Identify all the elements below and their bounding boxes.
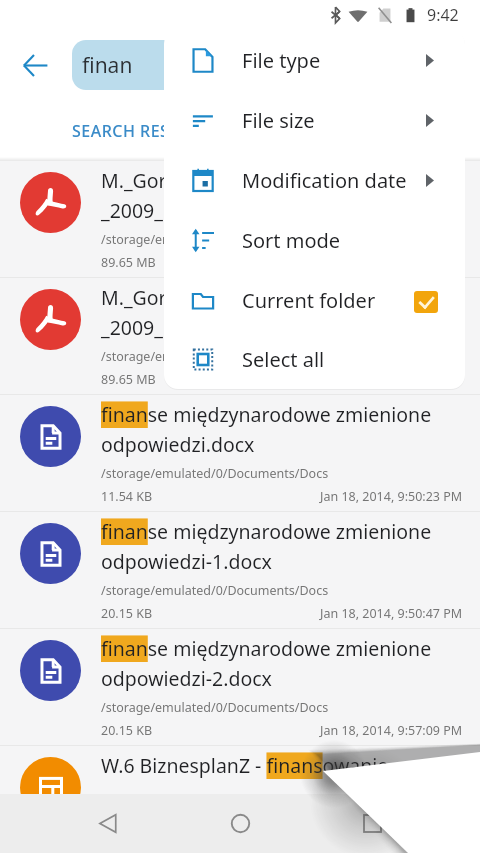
staticText: /storage/em [101, 348, 174, 365]
staticText: _2009_ [101, 197, 163, 224]
staticText: finan [82, 51, 133, 80]
staticText: 89.65 MB [101, 371, 156, 388]
staticText: /storage/emulated/0/Documents/Docs [101, 582, 329, 599]
staticText: File type [242, 47, 321, 74]
staticText: M._Gor [101, 167, 167, 194]
button[interactable]: Current folder [164, 270, 465, 330]
button[interactable]: Back [11, 41, 60, 90]
staticText: odpowiedzi-2.docx [101, 665, 272, 692]
staticText: odpowiedzi-1.docx [101, 548, 272, 575]
staticText: /storage/emulated/0/Documents/Docs [101, 465, 329, 482]
button[interactable]: M._Gor [0, 278, 480, 395]
staticText: Jan 18, 2014, 9:50:23 PM [320, 488, 463, 505]
staticText: Sort mode [242, 227, 341, 254]
button[interactable]: finanse międzynarodowe zmienione [0, 395, 480, 512]
staticText: SEARCH RESULTS [72, 120, 210, 142]
staticText: Modification date [242, 167, 407, 194]
button[interactable]: Sort mode [164, 210, 465, 270]
button[interactable]: Back [80, 795, 136, 851]
staticText: 89.65 MB [101, 254, 156, 271]
staticText: finanse międzynarodowe zmienione [101, 401, 432, 428]
button[interactable]: finanse międzynarodowe zmienione [0, 512, 480, 629]
button[interactable]: Home [212, 795, 268, 851]
button[interactable]: W.6 BiznesplanZ - finansowanie [0, 746, 480, 826]
staticText: 11.54 KB [101, 488, 153, 505]
button[interactable]: File type [164, 30, 465, 90]
staticText: 9:42 [427, 4, 459, 26]
staticText: /storage/emulated/0/Documents/Docs [101, 699, 329, 716]
staticText: File size [242, 107, 315, 134]
staticText: Current folder [242, 287, 376, 314]
staticText: odpowiedzi.docx [101, 431, 255, 458]
staticText: _2009_ [101, 314, 163, 341]
staticText: Jan 18, 2014, 9:50:47 PM [320, 605, 463, 622]
staticText: finanse międzynarodowe zmienione [101, 635, 432, 662]
button[interactable]: Select all [164, 330, 465, 389]
staticText: M._Gor [101, 284, 167, 311]
button[interactable]: Recents [344, 795, 400, 851]
staticText: Select all [242, 346, 325, 373]
button[interactable]: SEARCH RESULTS [72, 108, 210, 154]
staticText: finanse międzynarodowe zmienione [101, 518, 432, 545]
button[interactable]: finan [72, 40, 400, 90]
staticText: Jan 18, 2014, 9:57:09 PM [320, 722, 463, 739]
button[interactable]: Modification date [164, 150, 465, 210]
button[interactable]: File size [164, 90, 465, 150]
staticText: 20.15 KB [101, 605, 153, 622]
staticText: W.6 BiznesplanZ - finansowanie [101, 752, 389, 779]
staticText: /storage/em [101, 231, 174, 248]
button[interactable]: finanse międzynarodowe zmienione [0, 629, 480, 746]
staticText: 20.15 KB [101, 722, 153, 739]
button[interactable]: M._Gor [0, 161, 480, 278]
